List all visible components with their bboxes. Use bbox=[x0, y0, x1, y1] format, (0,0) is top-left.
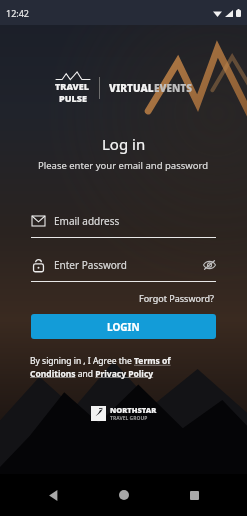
other: Email bbox=[31, 214, 45, 228]
staticText: NORTHSTAR bbox=[110, 405, 157, 415]
button[interactable]: Recent apps bbox=[177, 478, 211, 512]
staticText: Forgot Password? bbox=[139, 292, 214, 304]
staticText: Please enter your email and password bbox=[38, 159, 209, 172]
staticText: Log in bbox=[102, 134, 146, 154]
button[interactable]: Show password bbox=[202, 258, 216, 272]
staticText: PULSE bbox=[59, 92, 87, 104]
staticText: 12:42 bbox=[6, 7, 30, 19]
staticText: Enter Password bbox=[54, 258, 127, 272]
staticText: LOGIN bbox=[107, 320, 140, 334]
staticText: TRAVEL GROUP bbox=[110, 415, 148, 422]
button[interactable]: Password bbox=[31, 254, 216, 282]
button[interactable]: LOGIN bbox=[31, 314, 216, 339]
button[interactable]: Home bbox=[107, 478, 141, 512]
button[interactable]: Back bbox=[36, 478, 70, 512]
staticText: EVENTS bbox=[154, 81, 192, 95]
staticText: VIRTUAL bbox=[109, 81, 154, 95]
staticText: TRAVEL bbox=[55, 80, 90, 92]
staticText: Email address bbox=[54, 214, 120, 228]
button[interactable]: Email bbox=[31, 210, 216, 238]
other: Password bbox=[31, 258, 45, 272]
staticText: By signing in , I Agree the Terms of Con… bbox=[30, 355, 217, 379]
button[interactable]: Forgot Password? bbox=[137, 290, 216, 306]
